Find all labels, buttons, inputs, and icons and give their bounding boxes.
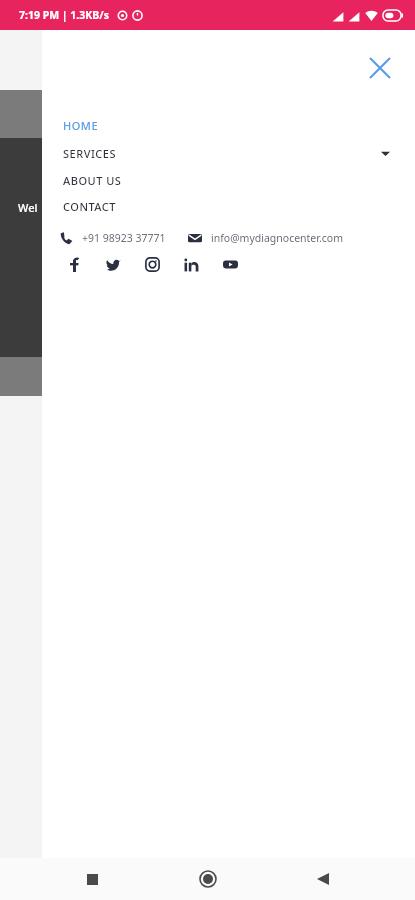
staticText: SERVICES [63,146,116,161]
button[interactable]: Twitter [102,253,124,275]
staticText: CONTACT [63,199,116,214]
button[interactable]: Back [299,858,347,900]
button[interactable]: LinkedIn [180,253,202,275]
button[interactable]: Call phone number [60,231,166,245]
button[interactable]: Close menu [356,44,404,92]
button[interactable]: YouTube [219,253,241,275]
button[interactable]: Instagram [141,253,163,275]
button[interactable]: Send email [188,231,343,245]
button[interactable]: CONTACT [42,193,415,220]
staticText: Wel [18,200,38,215]
button[interactable]: HOME [42,112,415,139]
button[interactable]: Home [184,858,232,900]
staticText: 7:19 PM | 1.3KB/s [19,8,109,22]
button[interactable]: Facebook [63,253,85,275]
button[interactable]: SERVICES [42,140,415,167]
staticText: ABOUT US [63,173,122,188]
staticText: info@mydiagnocenter.com [211,231,343,245]
button[interactable]: ABOUT US [42,167,415,194]
staticText: +91 98923 37771 [82,231,166,245]
staticText: HOME [63,118,99,133]
button[interactable]: Recent apps [68,858,116,900]
